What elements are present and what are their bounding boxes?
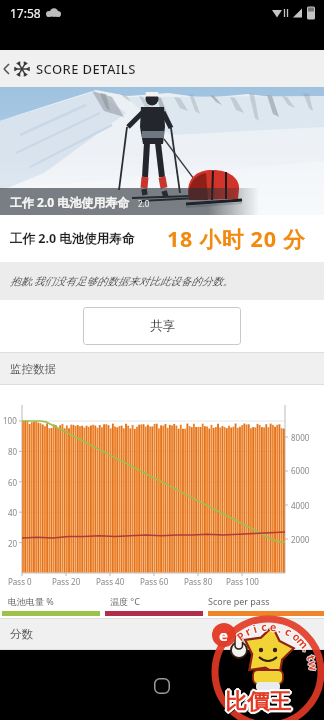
- staticText: c: [259, 619, 267, 634]
- staticText: i: [250, 621, 258, 636]
- staticText: r: [242, 624, 254, 640]
- staticText: c: [260, 618, 268, 633]
- staticText: c: [282, 623, 294, 639]
- staticText: 8000: [291, 432, 310, 443]
- staticText: 80: [8, 446, 18, 457]
- staticText: 100: [3, 415, 17, 426]
- staticText: 比價王: [224, 689, 290, 717]
- staticText: Pass 80: [184, 576, 213, 587]
- staticText: m: [293, 634, 311, 652]
- staticText: 2000: [291, 534, 310, 545]
- staticText: P: [234, 629, 249, 645]
- staticText: e: [270, 619, 279, 634]
- staticText: c: [260, 620, 268, 635]
- button[interactable]: [149, 673, 175, 699]
- staticText: e: [269, 619, 278, 634]
- staticText: 17:58: [10, 5, 41, 21]
- staticText: .: [299, 644, 314, 655]
- staticText: 比價王: [225, 690, 291, 718]
- staticText: .: [300, 643, 315, 654]
- staticText: w: [306, 660, 323, 672]
- staticText: r: [241, 624, 252, 639]
- staticText: SCORE DETAILS: [36, 60, 136, 78]
- staticText: 比價王: [226, 687, 292, 715]
- staticText: r: [242, 622, 253, 638]
- staticText: 4000: [291, 500, 310, 511]
- staticText: 20: [8, 538, 18, 549]
- staticText: 6000: [291, 465, 310, 476]
- staticText: 抱歉,我们没有足够的数据来对比此设备的分数。: [10, 274, 234, 288]
- staticText: 40: [8, 507, 18, 518]
- staticText: 比價王: [223, 688, 289, 716]
- staticText: m: [294, 633, 313, 651]
- staticText: e: [268, 619, 277, 634]
- staticText: P: [234, 627, 249, 643]
- staticText: c: [260, 619, 268, 634]
- staticText: e: [269, 618, 278, 633]
- staticText: Pass 60: [140, 576, 169, 587]
- staticText: i: [251, 620, 259, 635]
- staticText: .: [301, 645, 316, 656]
- staticText: Pass 100: [226, 576, 259, 587]
- staticText: P: [232, 629, 247, 645]
- staticText: i: [251, 621, 259, 636]
- staticText: e: [219, 625, 228, 645]
- staticText: 分数: [10, 627, 33, 641]
- staticText: m: [294, 634, 312, 652]
- staticText: Score per pass: [208, 595, 270, 607]
- staticText: .: [277, 620, 285, 635]
- staticText: w: [304, 660, 321, 672]
- staticText: r: [243, 623, 254, 638]
- staticText: 2.0: [138, 198, 150, 209]
- staticText: .: [278, 621, 286, 636]
- staticText: .: [300, 644, 315, 655]
- staticText: e: [269, 620, 277, 635]
- staticText: o: [290, 629, 305, 645]
- staticText: o: [289, 629, 304, 645]
- staticText: c: [283, 622, 295, 639]
- staticText: t: [304, 653, 320, 662]
- staticText: c: [261, 619, 269, 634]
- staticText: t: [304, 654, 320, 663]
- staticText: 比價王: [227, 690, 293, 718]
- staticText: .: [276, 622, 285, 637]
- staticText: 温度 °C: [110, 595, 140, 607]
- staticText: 比價王: [224, 687, 290, 715]
- button[interactable]: 共享: [83, 307, 241, 345]
- staticText: .: [301, 643, 316, 654]
- staticText: .: [277, 621, 285, 636]
- staticText: P: [233, 627, 247, 643]
- button[interactable]: [0, 50, 14, 87]
- staticText: w: [305, 659, 321, 671]
- staticText: 工作 2.0 电池使用寿命: [10, 230, 135, 247]
- staticText: i: [252, 620, 260, 636]
- staticText: c: [282, 624, 294, 640]
- staticText: m: [294, 634, 313, 652]
- staticText: t: [303, 652, 319, 661]
- staticText: Pass 40: [96, 576, 125, 587]
- staticText: o: [289, 628, 304, 644]
- staticText: c: [283, 623, 295, 639]
- staticText: c: [283, 624, 296, 640]
- staticText: m: [293, 633, 311, 651]
- staticText: Pass 0: [8, 576, 32, 587]
- staticText: t: [303, 653, 319, 663]
- staticText: 共享: [150, 318, 175, 334]
- staticText: 工作 2.0 电池使用寿命: [10, 194, 130, 210]
- staticText: 60: [8, 477, 18, 488]
- staticText: 18 小时 20 分: [167, 224, 306, 253]
- staticText: 监控数据: [10, 362, 56, 376]
- staticText: 电池电量 %: [8, 595, 54, 607]
- staticText: 比價王: [226, 689, 292, 717]
- staticText: 比價王: [225, 686, 291, 714]
- staticText: 比價王: [227, 688, 293, 716]
- staticText: P: [233, 628, 248, 644]
- staticText: r: [242, 623, 253, 639]
- staticText: Pass 20: [52, 576, 81, 587]
- staticText: o: [290, 628, 305, 644]
- staticText: o: [290, 629, 304, 645]
- staticText: t: [305, 652, 320, 662]
- staticText: w: [305, 661, 322, 673]
- staticText: w: [305, 660, 322, 672]
- staticText: 比價王: [225, 688, 291, 716]
